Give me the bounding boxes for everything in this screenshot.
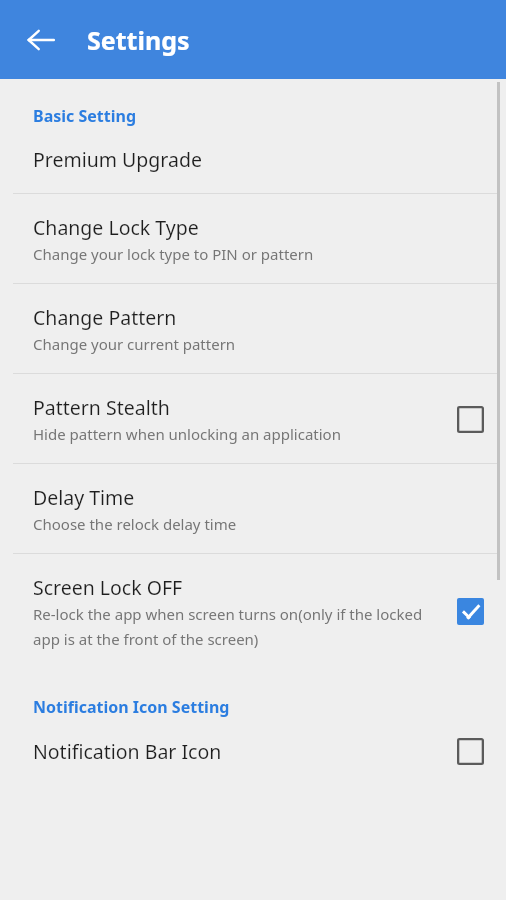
- staticText: Change your lock type to PIN or pattern: [33, 244, 314, 264]
- staticText: Screen Lock OFF: [33, 574, 183, 601]
- button[interactable]: Pattern Stealth: [457, 406, 484, 433]
- staticText: Hide pattern when unlocking an applicati…: [33, 424, 341, 444]
- staticText: Settings: [87, 23, 190, 57]
- staticText: Notification Icon Setting: [33, 696, 230, 718]
- button[interactable]: Change Lock Type: [0, 194, 506, 283]
- button[interactable]: Notification Bar Icon: [457, 738, 484, 765]
- button[interactable]: Back: [18, 17, 64, 63]
- staticText: Notification Bar Icon: [33, 738, 222, 765]
- button[interactable]: Premium Upgrade: [0, 127, 506, 193]
- button[interactable]: Screen Lock OFF: [457, 598, 484, 625]
- button[interactable]: Screen Lock OFF: [0, 554, 506, 668]
- staticText: Change your current pattern: [33, 334, 236, 354]
- staticText: Premium Upgrade: [33, 146, 202, 173]
- button[interactable]: Notification Bar Icon: [0, 718, 506, 785]
- button[interactable]: Change Pattern: [0, 284, 506, 373]
- staticText: Pattern Stealth: [33, 394, 170, 421]
- staticText: Re-lock the app when screen turns on(onl…: [33, 604, 443, 649]
- staticText: Delay Time: [33, 484, 135, 511]
- button[interactable]: Pattern Stealth: [0, 374, 506, 463]
- staticText: Change Lock Type: [33, 214, 199, 241]
- staticText: Choose the relock delay time: [33, 514, 237, 534]
- staticText: Basic Setting: [33, 105, 137, 127]
- button[interactable]: Delay Time: [0, 464, 506, 553]
- staticText: Change Pattern: [33, 304, 177, 331]
